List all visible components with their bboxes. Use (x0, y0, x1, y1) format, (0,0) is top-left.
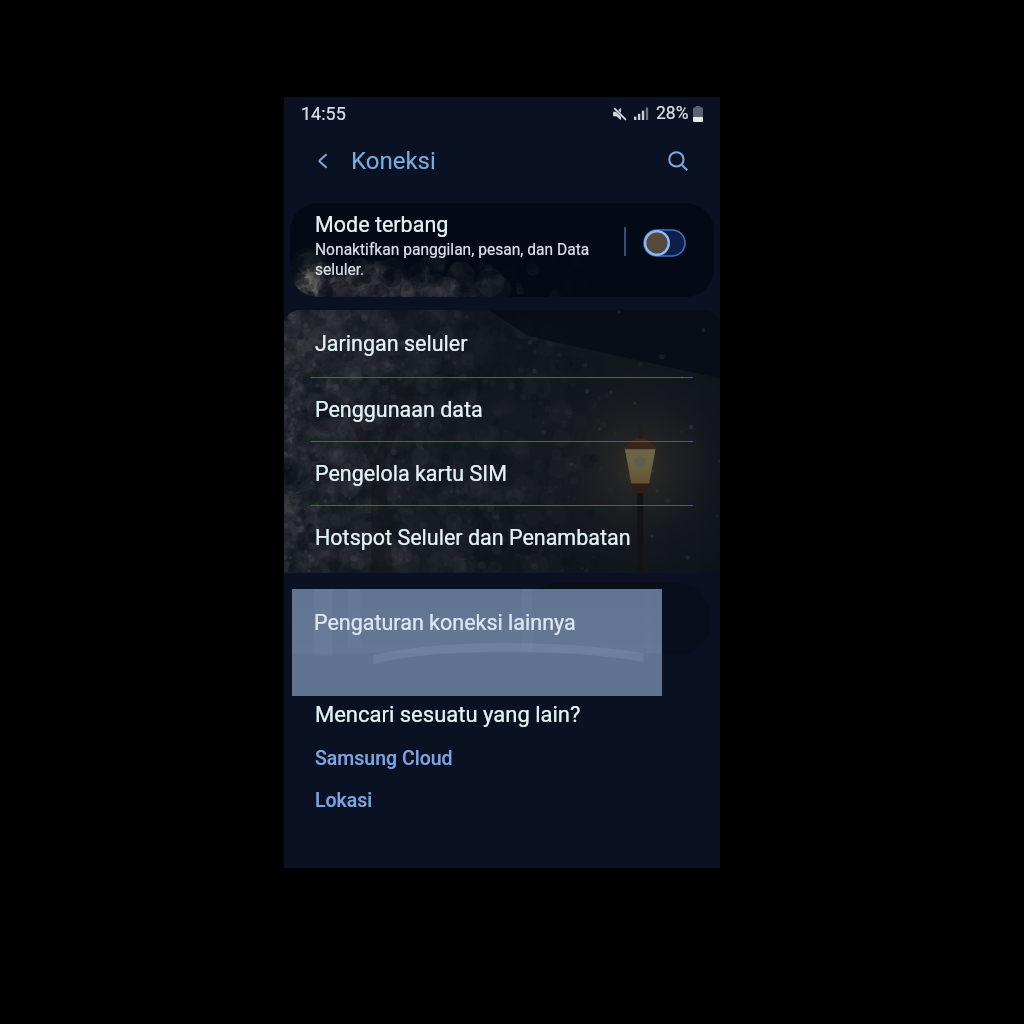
staticText: Nonaktifkan panggilan, pesan, dan Data s… (315, 241, 590, 279)
staticText: 28% (656, 103, 689, 124)
staticText: Mencari sesuatu yang lain? (315, 702, 581, 728)
button[interactable]: Lokasi (315, 789, 373, 812)
button[interactable]: Pengelola kartu SIM (284, 442, 720, 505)
button[interactable]: Back (312, 147, 436, 175)
button[interactable]: Airplane mode toggle (634, 223, 690, 263)
button[interactable]: Mode terbang (290, 203, 714, 297)
button[interactable]: Penggunaan data (284, 378, 720, 441)
staticText: 14:55 (301, 103, 346, 124)
button[interactable]: Jaringan seluler (284, 310, 720, 377)
other: Back (312, 150, 334, 172)
staticText: Pengelola kartu SIM (315, 461, 507, 486)
staticText: Jaringan seluler (315, 331, 468, 356)
button[interactable]: Pengaturan koneksi lainnya (292, 589, 662, 696)
staticText: Hotspot Seluler dan Penambatan (315, 525, 631, 550)
button[interactable]: Search (664, 147, 692, 175)
staticText: Koneksi (351, 147, 436, 175)
staticText: Penggunaan data (315, 397, 483, 422)
staticText: Mode terbang (315, 212, 449, 237)
staticText: Pengaturan koneksi lainnya (314, 610, 576, 635)
button[interactable]: Hotspot Seluler dan Penambatan (284, 506, 720, 569)
button[interactable]: Samsung Cloud (315, 747, 453, 770)
